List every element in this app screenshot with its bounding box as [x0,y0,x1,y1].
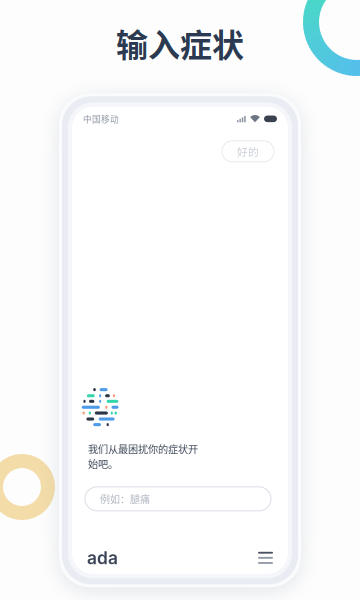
staticText: 中国移动 [83,113,119,125]
button[interactable]: Menu [258,552,273,564]
staticText: 输入症状 [116,20,244,66]
staticText: 例如：腿痛 [100,492,150,506]
staticText: 我们从最困扰你的症状开始吧。 [88,441,198,471]
button[interactable]: 好的 [222,141,274,162]
button[interactable]: 例如：腿痛 [85,487,271,511]
staticText: 好的 [237,144,259,159]
staticText: ada [87,547,118,568]
